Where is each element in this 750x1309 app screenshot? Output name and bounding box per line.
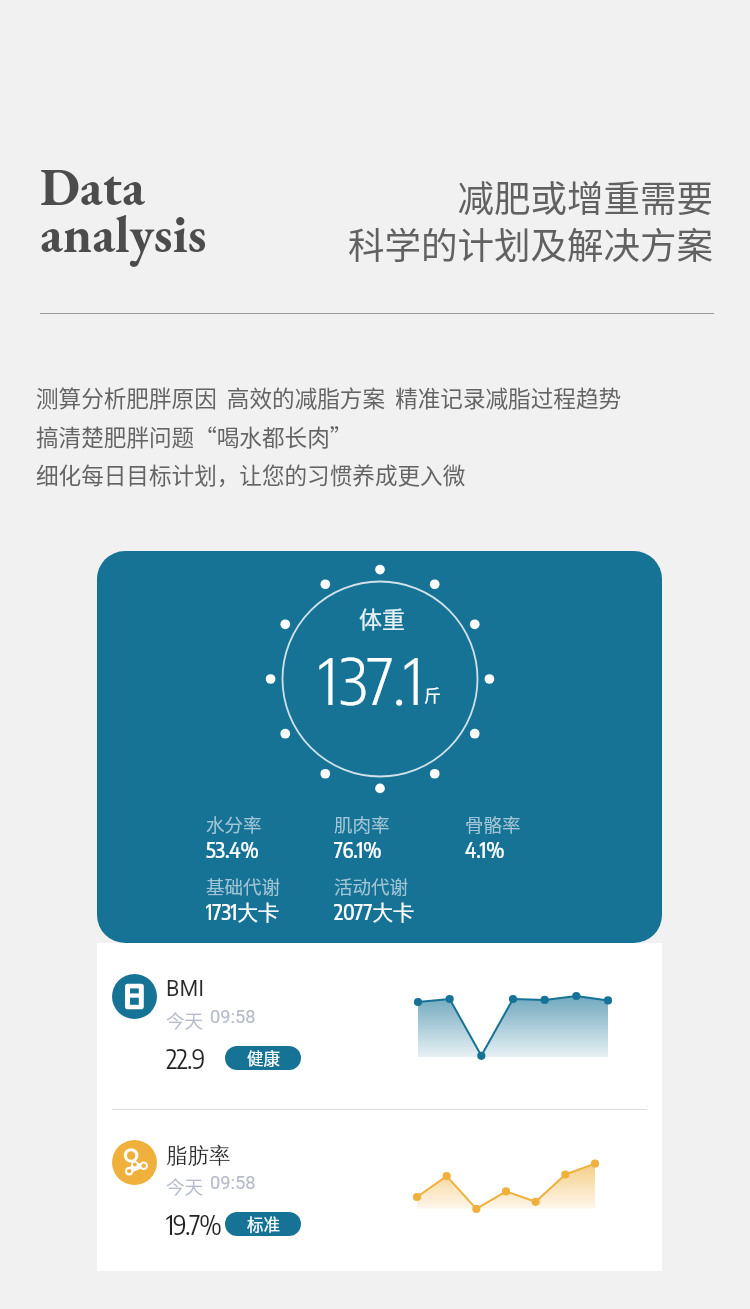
staticText: 测算分析肥胖原因 高效的减脂方案 精准记录减脂过程趋势 搞清楚肥胖问题“喝水都长… <box>36 381 622 490</box>
staticText: 减肥或增重需要 科学的计划及解决方案 <box>0 170 713 270</box>
button[interactable]: Body fat rate <box>97 1109 662 1273</box>
staticText: 肌肉率 <box>334 811 390 838</box>
staticText: 09:58 <box>210 1006 256 1027</box>
staticText: 今天 <box>166 1172 204 1199</box>
staticText: 活动代谢 <box>334 873 409 900</box>
staticText: 斤 <box>424 682 441 707</box>
staticText: BMI <box>166 976 205 1001</box>
staticText: 76.1% <box>334 836 382 862</box>
staticText: 今天 <box>166 1006 204 1033</box>
staticText: 脂肪率 <box>166 1142 231 1169</box>
staticText: 2077大卡 <box>334 898 415 926</box>
staticText: 09:58 <box>210 1172 256 1193</box>
staticText: 53.4% <box>206 836 259 862</box>
staticText: 19.7% <box>166 1207 221 1241</box>
button[interactable]: 标准 <box>225 1212 301 1236</box>
staticText: 基础代谢 <box>206 873 281 900</box>
staticText: 水分率 <box>206 811 262 838</box>
button[interactable]: 健康 <box>225 1046 301 1070</box>
staticText: 体重 <box>262 601 502 634</box>
other: BMI <box>112 974 157 1019</box>
staticText: 137.1 <box>319 639 425 719</box>
button[interactable]: 体重 <box>97 551 662 943</box>
staticText: 1731大卡 <box>206 898 280 926</box>
button[interactable]: BMI <box>97 943 662 1107</box>
staticText: 22.9 <box>166 1041 205 1075</box>
staticText: Data analysis <box>40 153 207 268</box>
staticText: 骨骼率 <box>465 811 521 838</box>
staticText: 4.1% <box>465 836 505 862</box>
staticText: 健康 <box>247 1046 280 1070</box>
staticText: 标准 <box>247 1212 280 1236</box>
other: Body fat rate <box>112 1140 157 1185</box>
